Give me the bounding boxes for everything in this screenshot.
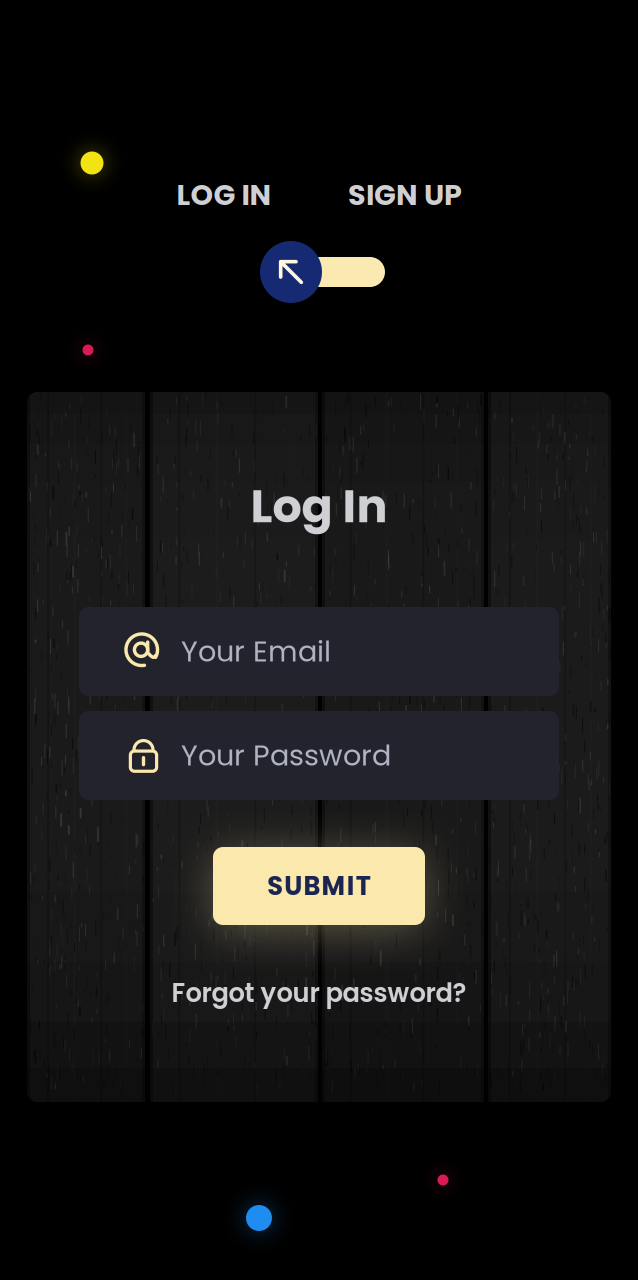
staticText: LOG IN (176, 175, 271, 215)
staticText: Your Email (181, 631, 331, 671)
button[interactable]: SUBMIT (213, 847, 425, 925)
staticText: Forgot your password? (171, 975, 466, 1011)
button[interactable]: Forgot your password? (27, 973, 611, 1013)
staticText: SUBMIT (267, 868, 371, 904)
staticText: Your Password (181, 735, 391, 775)
button[interactable]: Your Email (79, 607, 559, 696)
staticText: SIGN UP (348, 175, 462, 215)
button[interactable]: Your Password (79, 711, 559, 800)
staticText: Log In (250, 474, 387, 538)
button[interactable]: LOG IN (154, 175, 294, 215)
button[interactable]: Switch to Sign Up (247, 241, 372, 303)
button[interactable]: SIGN UP (330, 175, 480, 215)
